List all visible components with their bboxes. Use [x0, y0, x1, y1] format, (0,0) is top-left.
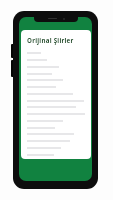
staticText: Orijinal Şiirler: [27, 36, 74, 44]
button[interactable]: Orijinal Şiirler: [21, 30, 91, 159]
